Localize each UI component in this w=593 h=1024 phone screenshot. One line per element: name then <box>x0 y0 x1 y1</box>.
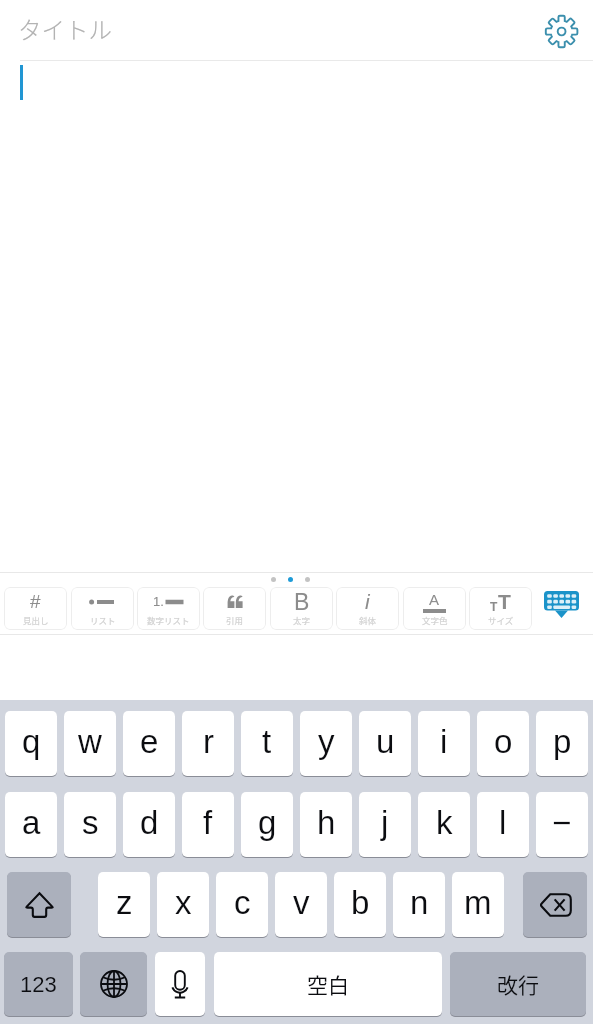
staticText: o <box>494 723 513 760</box>
button[interactable]: A <box>403 587 466 630</box>
staticText: B <box>294 589 310 614</box>
staticText: j <box>381 804 389 841</box>
button[interactable]: リスト <box>71 587 134 630</box>
staticText: c <box>234 884 251 921</box>
button[interactable]: Change keyboard <box>80 952 147 1016</box>
button[interactable]: Hide keyboard <box>544 591 579 618</box>
staticText: タイトル <box>18 12 112 46</box>
staticText: q <box>22 723 41 760</box>
button[interactable]: c <box>216 872 268 937</box>
button[interactable]: q <box>5 711 57 776</box>
button[interactable]: f <box>182 792 234 857</box>
button[interactable]: 改行 <box>450 952 586 1016</box>
button[interactable]: s <box>64 792 116 857</box>
staticText: i <box>440 723 448 760</box>
button[interactable]: b <box>334 872 386 937</box>
staticText: 見出し <box>23 614 49 626</box>
other: Voice input <box>171 970 189 998</box>
button[interactable]: x <box>157 872 209 937</box>
button[interactable]: m <box>452 872 504 937</box>
button[interactable]: g <box>241 792 293 857</box>
button[interactable]: Settings <box>539 8 584 53</box>
staticText: l <box>499 804 507 841</box>
button[interactable]: p <box>536 711 588 776</box>
button[interactable]: # <box>4 587 67 630</box>
staticText: 引用 <box>226 614 244 626</box>
button[interactable]: B <box>270 587 333 630</box>
staticText: 1. <box>153 594 164 609</box>
button[interactable]: t <box>241 711 293 776</box>
staticText: t <box>262 723 272 760</box>
staticText: 斜体 <box>359 614 377 626</box>
button[interactable]: i <box>336 587 399 630</box>
other: Change keyboard <box>100 970 128 998</box>
staticText: 123 <box>20 972 57 997</box>
staticText: 数字リスト <box>147 614 190 626</box>
button[interactable]: Backspace <box>523 872 587 937</box>
button[interactable]: a <box>5 792 57 857</box>
staticText: 文字色 <box>422 614 448 626</box>
button[interactable]: − <box>536 792 588 857</box>
staticText: v <box>293 884 310 921</box>
button[interactable]: r <box>182 711 234 776</box>
button[interactable]: i <box>418 711 470 776</box>
button[interactable]: h <box>300 792 352 857</box>
staticText: 太字 <box>293 614 311 626</box>
button[interactable]: v <box>275 872 327 937</box>
button[interactable]: y <box>300 711 352 776</box>
staticText: a <box>22 804 41 841</box>
staticText: s <box>82 804 99 841</box>
staticText: A <box>429 591 440 608</box>
staticText: m <box>464 884 492 921</box>
staticText: n <box>410 884 429 921</box>
staticText: u <box>376 723 395 760</box>
staticText: サイズ <box>488 614 514 626</box>
button[interactable]: Voice input <box>155 952 205 1016</box>
button[interactable]: Shift <box>7 872 71 937</box>
staticText: r <box>203 723 214 760</box>
staticText: y <box>318 723 335 760</box>
staticText: d <box>140 804 159 841</box>
staticText: i <box>365 590 370 613</box>
button[interactable]: z <box>98 872 150 937</box>
button[interactable]: 引用 <box>203 587 266 630</box>
staticText: w <box>78 723 102 760</box>
staticText: T <box>498 590 511 613</box>
staticText: # <box>30 591 41 612</box>
staticText: x <box>175 884 192 921</box>
staticText: 空白 <box>307 969 349 999</box>
button[interactable]: w <box>64 711 116 776</box>
button[interactable]: e <box>123 711 175 776</box>
staticText: k <box>436 804 453 841</box>
button[interactable]: k <box>418 792 470 857</box>
other: Shift <box>25 892 54 918</box>
staticText: リスト <box>90 614 116 626</box>
other: Backspace <box>539 893 572 917</box>
staticText: 改行 <box>497 969 539 999</box>
button[interactable]: l <box>477 792 529 857</box>
staticText: T <box>490 600 498 613</box>
staticText: g <box>258 804 277 841</box>
staticText: z <box>116 884 133 921</box>
staticText: f <box>203 804 213 841</box>
button[interactable]: T <box>469 587 532 630</box>
button[interactable]: o <box>477 711 529 776</box>
button[interactable]: u <box>359 711 411 776</box>
button[interactable]: j <box>359 792 411 857</box>
button[interactable]: 123 <box>4 952 73 1016</box>
staticText: e <box>140 723 159 760</box>
staticText: − <box>552 804 572 841</box>
button[interactable]: 空白 <box>214 952 442 1016</box>
button[interactable]: 1. <box>137 587 200 630</box>
staticText: p <box>553 723 572 760</box>
staticText: h <box>317 804 336 841</box>
button[interactable]: n <box>393 872 445 937</box>
staticText: b <box>351 884 370 921</box>
button[interactable]: d <box>123 792 175 857</box>
